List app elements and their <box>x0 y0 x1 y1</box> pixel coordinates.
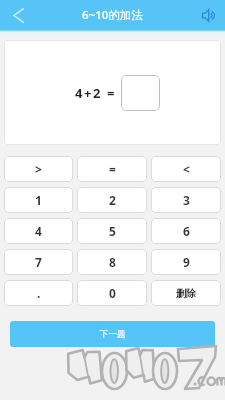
staticText: 9 <box>183 254 190 270</box>
staticText: > <box>35 161 42 177</box>
staticText: 3 <box>183 192 190 208</box>
staticText: 5 <box>109 223 116 239</box>
staticText: = <box>109 161 116 177</box>
staticText: 0 <box>109 285 116 301</box>
button[interactable]: 6 <box>151 218 221 244</box>
staticText: 1 <box>35 192 42 208</box>
button[interactable]: 8 <box>77 249 147 275</box>
staticText: 7 <box>35 254 42 270</box>
button[interactable]: 下一题 <box>10 321 215 347</box>
button[interactable]: 删除 <box>151 280 221 306</box>
button[interactable]: 9 <box>151 249 221 275</box>
staticText: < <box>183 161 190 177</box>
button[interactable]: Sound <box>193 0 225 30</box>
button[interactable]: 3 <box>151 187 221 213</box>
button[interactable]: < <box>151 156 221 182</box>
button[interactable]: = <box>77 156 147 182</box>
button[interactable]: 4 <box>4 218 73 244</box>
button[interactable]: . <box>4 280 73 306</box>
staticText: 6~10的加法 <box>82 7 143 23</box>
button[interactable]: Back <box>0 0 36 30</box>
button[interactable]: 5 <box>77 218 147 244</box>
button[interactable]: 2 <box>77 187 147 213</box>
staticText: 8 <box>109 254 116 270</box>
staticText: 下一题 <box>100 329 126 340</box>
button[interactable]: Answer <box>121 75 160 111</box>
staticText: . <box>37 285 41 301</box>
button[interactable]: 7 <box>4 249 73 275</box>
staticText: 6 <box>183 223 190 239</box>
staticText: 4 <box>35 223 42 239</box>
button[interactable]: 1 <box>4 187 73 213</box>
staticText: 4+2 = <box>75 84 117 102</box>
staticText: 2 <box>109 192 116 208</box>
button[interactable]: 0 <box>77 280 147 306</box>
staticText: 删除 <box>176 287 196 300</box>
button[interactable]: > <box>4 156 73 182</box>
